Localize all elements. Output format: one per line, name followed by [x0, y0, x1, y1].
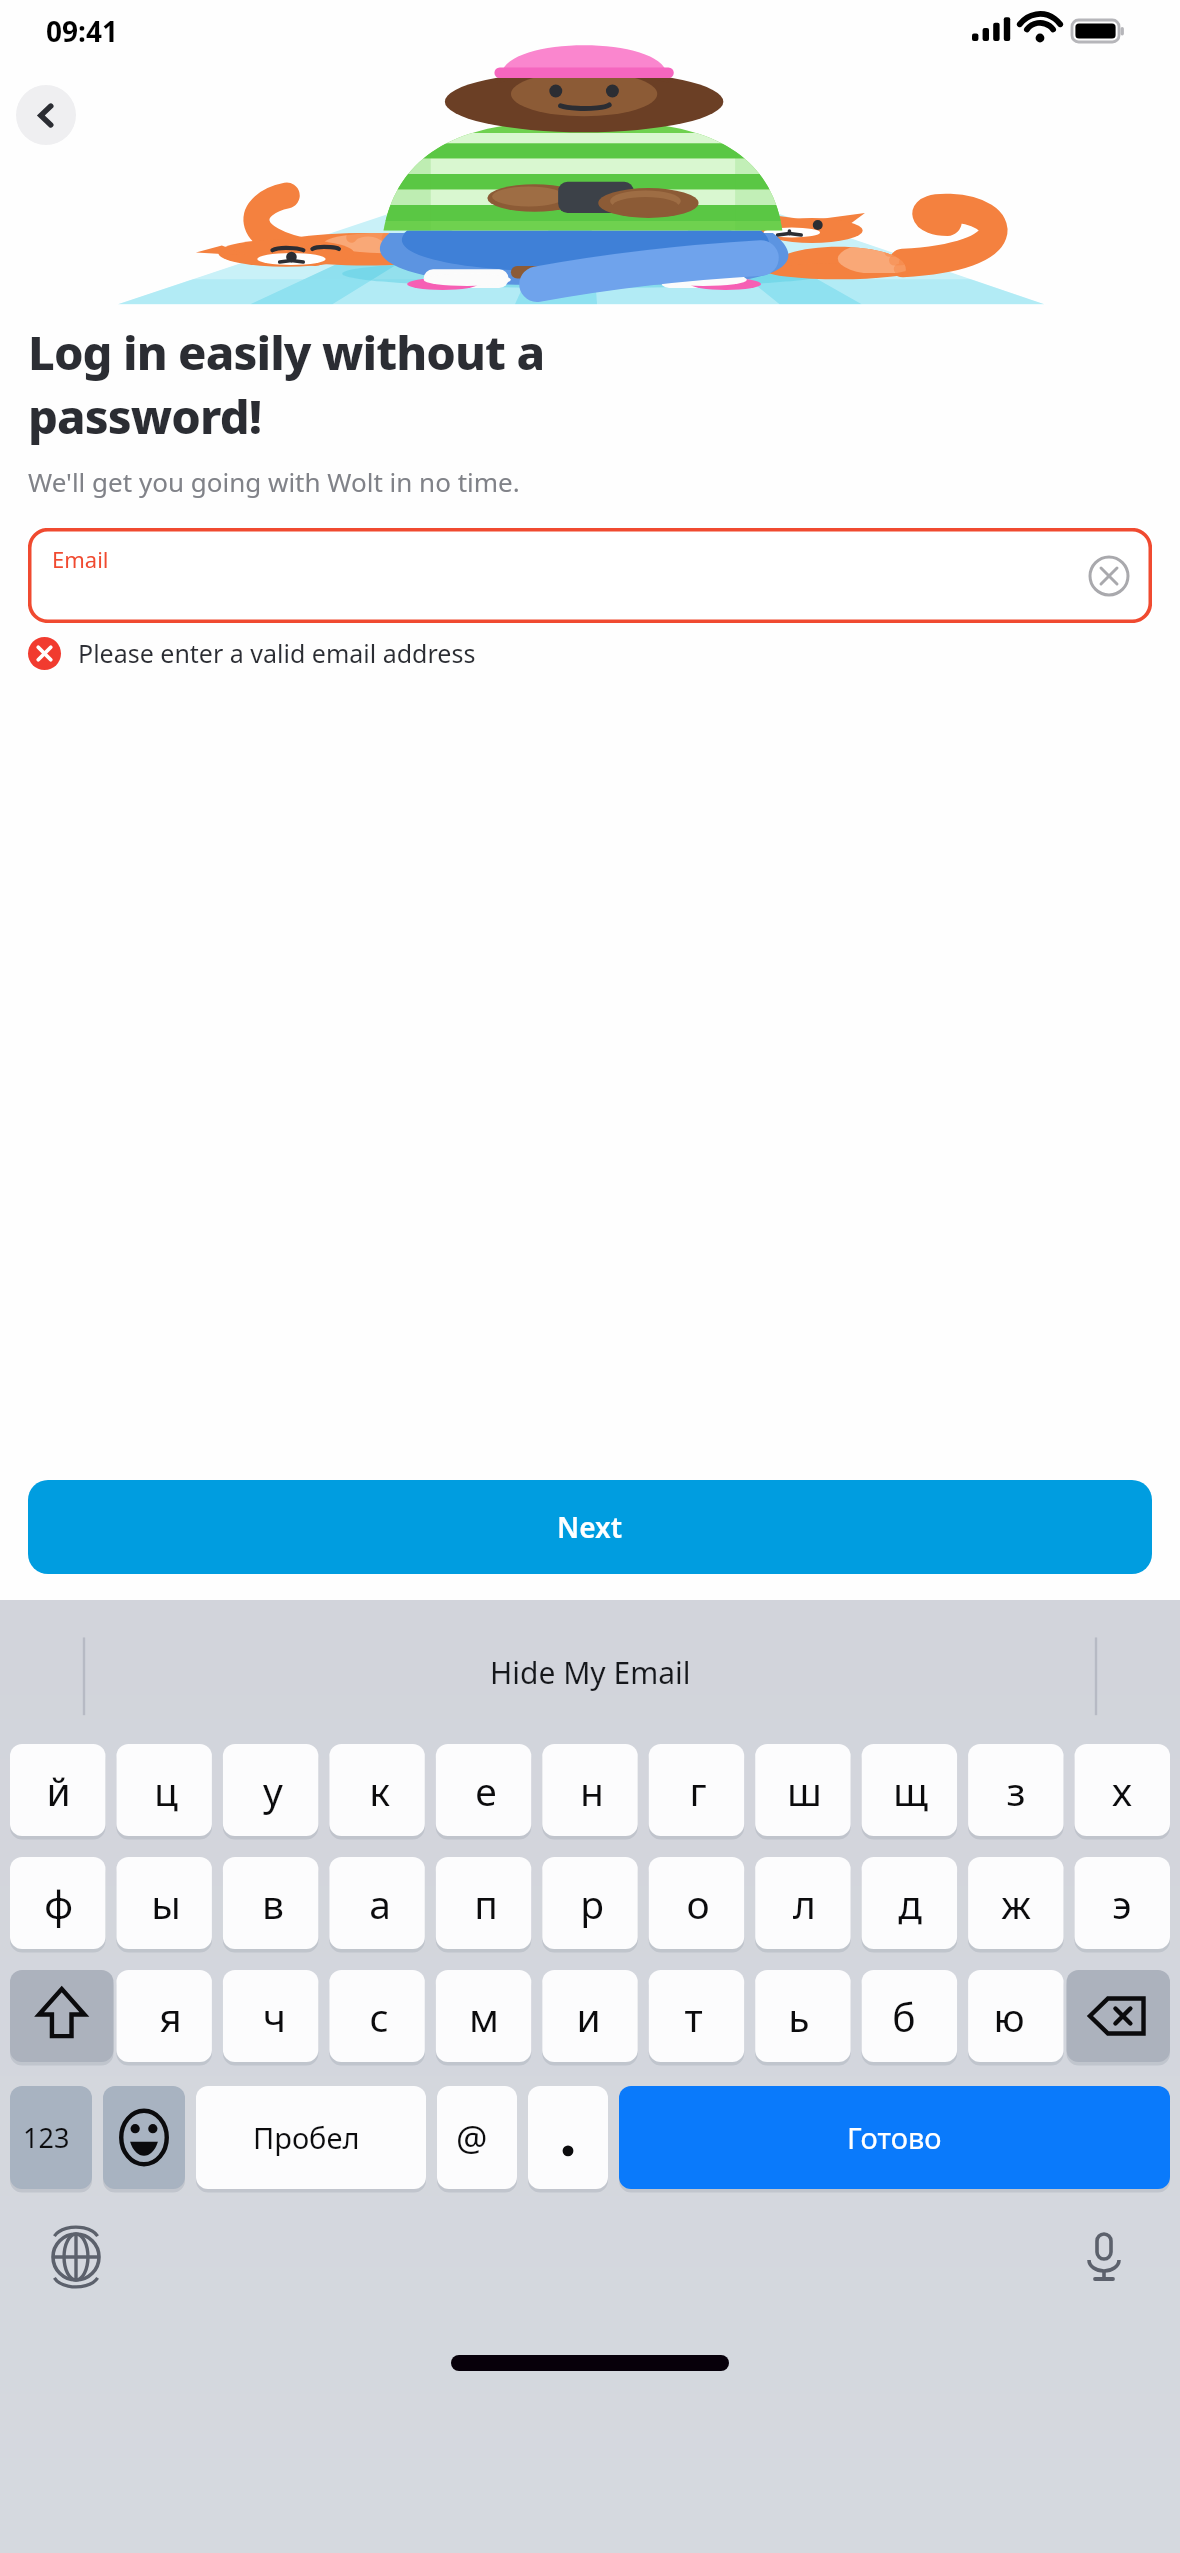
button[interactable]: Dictation: [1072, 2225, 1136, 2289]
button[interactable]: Backspace: [1061, 1970, 1175, 2062]
button[interactable]: п: [433, 1857, 539, 1949]
staticText: Email: [52, 544, 109, 574]
button[interactable]: л: [751, 1857, 857, 1949]
staticText: в: [262, 1877, 284, 1930]
staticText: г: [689, 1764, 707, 1817]
button[interactable]: Готово: [614, 2086, 1175, 2189]
staticText: Next: [557, 1508, 623, 1546]
button[interactable]: ф: [5, 1857, 112, 1949]
button[interactable]: б: [851, 1970, 956, 2062]
button[interactable]: д: [857, 1857, 963, 1949]
button[interactable]: э: [1069, 1857, 1175, 1949]
button[interactable]: Пробел: [191, 2086, 421, 2189]
staticText: Please enter a valid email address: [78, 636, 476, 670]
staticText: н: [580, 1764, 604, 1817]
staticText: Log in easily without a password!: [28, 320, 1152, 448]
staticText: й: [46, 1764, 71, 1817]
button[interactable]: Clear email: [1086, 553, 1132, 599]
staticText: л: [793, 1877, 816, 1930]
staticText: ф: [44, 1877, 73, 1930]
button[interactable]: м: [431, 1970, 536, 2062]
button[interactable]: р: [539, 1857, 645, 1949]
staticText: Готово: [847, 2118, 942, 2157]
staticText: э: [1112, 1877, 1132, 1930]
button[interactable]: ч: [222, 1970, 326, 2062]
staticText: у: [263, 1764, 283, 1817]
button[interactable]: 123: [5, 2086, 87, 2189]
button[interactable]: е: [433, 1744, 539, 1836]
button[interactable]: Change keyboard language: [44, 2225, 108, 2289]
button[interactable]: я: [118, 1970, 222, 2062]
button[interactable]: ж: [963, 1857, 1069, 1949]
button[interactable]: Emoji: [98, 2086, 180, 2189]
staticText: We'll get you going with Wolt in no time…: [28, 464, 1152, 499]
button[interactable]: в: [219, 1857, 326, 1949]
button[interactable]: о: [645, 1857, 751, 1949]
staticText: т: [684, 1990, 703, 2043]
button[interactable]: Hide My Email: [490, 1652, 691, 1693]
button[interactable]: ш: [751, 1744, 857, 1836]
staticText: р: [580, 1877, 604, 1930]
staticText: б: [892, 1990, 916, 2043]
button[interactable]: н: [539, 1744, 645, 1836]
button[interactable]: ю: [956, 1970, 1061, 2062]
staticText: з: [1006, 1764, 1026, 1817]
button[interactable]: Period: [523, 2086, 603, 2189]
button[interactable]: й: [5, 1744, 112, 1836]
button[interactable]: х: [1069, 1744, 1175, 1836]
button[interactable]: а: [326, 1857, 433, 1949]
staticText: е: [475, 1764, 497, 1817]
staticText: @: [456, 2114, 488, 2162]
staticText: ы: [151, 1877, 181, 1930]
staticText: ж: [1001, 1877, 1031, 1930]
staticText: ц: [154, 1764, 178, 1817]
staticText: и: [576, 1990, 601, 2043]
staticText: п: [474, 1877, 498, 1930]
button[interactable]: ц: [112, 1744, 219, 1836]
staticText: м: [469, 1990, 499, 2043]
button[interactable]: ь: [746, 1970, 851, 2062]
staticText: д: [898, 1877, 922, 1930]
button[interactable]: @: [432, 2086, 512, 2189]
button[interactable]: Back: [16, 85, 76, 145]
button[interactable]: Next: [28, 1480, 1152, 1574]
button[interactable]: г: [645, 1744, 751, 1836]
staticText: ю: [993, 1990, 1025, 2043]
button[interactable]: щ: [857, 1744, 963, 1836]
staticText: ь: [788, 1990, 810, 2043]
staticText: я: [159, 1990, 182, 2043]
staticText: х: [1112, 1764, 1132, 1817]
staticText: 09:41: [46, 12, 118, 50]
staticText: Пробел: [253, 2118, 360, 2157]
button[interactable]: Shift: [5, 1970, 118, 2062]
button[interactable]: с: [326, 1970, 431, 2062]
staticText: о: [686, 1877, 710, 1930]
staticText: к: [369, 1764, 390, 1817]
staticText: 123: [23, 2119, 70, 2156]
staticText: а: [369, 1877, 391, 1930]
staticText: ч: [263, 1990, 286, 2043]
button[interactable]: з: [963, 1744, 1069, 1836]
staticText: щ: [893, 1764, 928, 1817]
button[interactable]: к: [326, 1744, 433, 1836]
button[interactable]: и: [536, 1970, 641, 2062]
button[interactable]: у: [219, 1744, 326, 1836]
button[interactable]: ы: [112, 1857, 219, 1949]
staticText: ш: [787, 1764, 822, 1817]
staticText: с: [369, 1990, 389, 2043]
button[interactable]: т: [641, 1970, 746, 2062]
button[interactable]: Email: [28, 528, 1152, 623]
